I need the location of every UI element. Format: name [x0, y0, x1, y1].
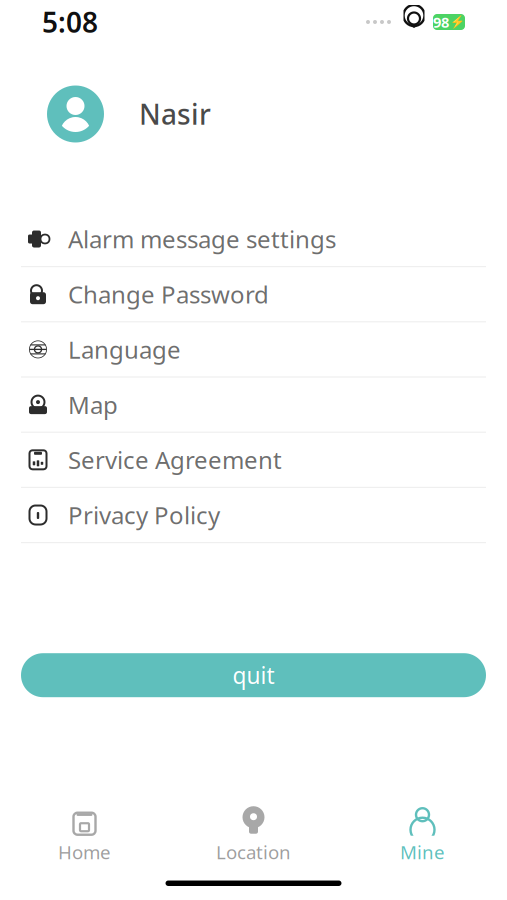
- staticText: Home: [58, 840, 111, 864]
- button[interactable]: Location: [169, 800, 338, 870]
- staticText: Map: [68, 389, 118, 421]
- staticText: quit: [232, 660, 274, 690]
- button[interactable]: Mine: [338, 800, 507, 870]
- button[interactable]: Map: [0, 378, 507, 433]
- staticText: Location: [216, 840, 291, 864]
- staticText: ⚡: [450, 15, 465, 29]
- staticText: Change Password: [68, 278, 269, 310]
- staticText: Nasir: [139, 95, 211, 133]
- button[interactable]: quit: [21, 653, 486, 697]
- staticText: 98: [433, 12, 449, 32]
- button[interactable]: Home: [0, 800, 169, 870]
- button[interactable]: Privacy Policy: [0, 488, 507, 543]
- button[interactable]: Language: [0, 322, 507, 378]
- staticText: 5:08: [42, 3, 98, 41]
- staticText: Language: [68, 333, 181, 365]
- button[interactable]: Alarm message settings: [0, 212, 507, 267]
- button[interactable]: Change Password: [0, 267, 507, 322]
- button[interactable]: Nasir: [0, 85, 507, 142]
- staticText: Mine: [400, 840, 445, 864]
- staticText: Service Agreement: [68, 444, 282, 476]
- staticText: Privacy Policy: [68, 499, 220, 531]
- button[interactable]: Service Agreement: [0, 433, 507, 488]
- staticText: Alarm message settings: [68, 223, 336, 255]
